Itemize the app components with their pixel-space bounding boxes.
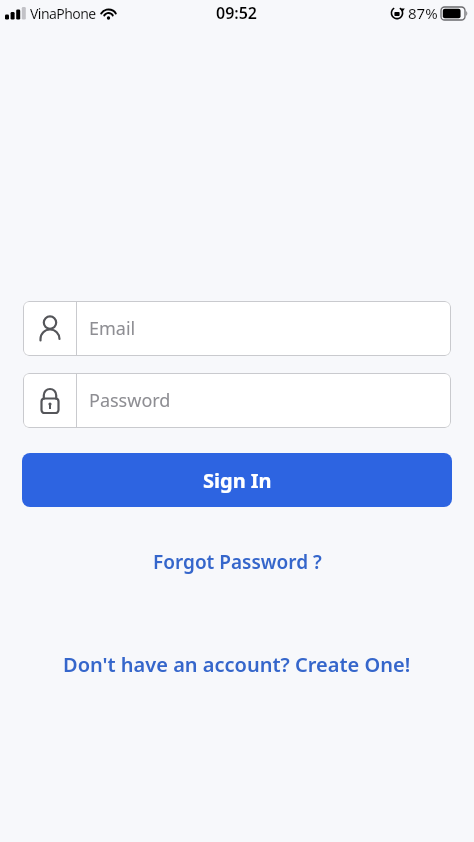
staticText: Sign In	[203, 467, 272, 494]
staticText: Forgot Password ?	[153, 549, 322, 575]
button[interactable]: Forgot Password ?	[145, 545, 330, 579]
button[interactable]: Don't have an account? Create One!	[55, 647, 419, 682]
button[interactable]: Email	[23, 301, 451, 356]
button[interactable]: Password	[23, 373, 451, 428]
staticText: Email	[89, 316, 136, 341]
staticText: VinaPhone	[30, 4, 96, 23]
staticText: Password	[89, 388, 171, 413]
staticText: Don't have an account? Create One!	[63, 651, 411, 678]
button[interactable]: Sign In	[22, 453, 452, 507]
staticText: 87%	[408, 3, 438, 23]
staticText: 09:52	[216, 2, 258, 24]
